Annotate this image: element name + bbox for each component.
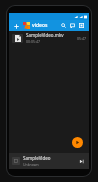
staticText: Unknown: [23, 162, 39, 167]
button[interactable]: More options: [77, 21, 86, 30]
button[interactable]: SampleVideo.mkv: [9, 31, 89, 45]
button[interactable]: Cast to device: [68, 21, 77, 30]
button[interactable]: SampleVideo: [9, 153, 89, 169]
button[interactable]: Search: [59, 21, 68, 30]
staticText: 05:47: [77, 36, 86, 41]
button[interactable]: Play all videos: [72, 137, 83, 148]
staticText: 00:05:47: [26, 39, 40, 44]
button[interactable]: Open navigation drawer: [12, 22, 20, 30]
button[interactable]: Play: [77, 157, 86, 166]
staticText: SampleVideo.mkv: [26, 32, 64, 38]
staticText: SampleVideo: [23, 155, 51, 161]
staticText: videos: [32, 22, 48, 29]
